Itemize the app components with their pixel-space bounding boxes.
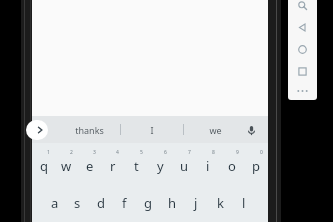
button[interactable]: 3 <box>78 143 101 183</box>
staticText: s <box>74 194 81 212</box>
staticText: 7 <box>188 149 191 156</box>
staticText: y <box>157 157 164 175</box>
staticText: 4 <box>116 149 119 156</box>
staticText: 1 <box>47 149 50 156</box>
staticText: k <box>217 194 224 212</box>
staticText: 9 <box>236 149 239 156</box>
button[interactable]: 4 <box>101 143 124 183</box>
staticText: j <box>194 194 198 212</box>
staticText: p <box>252 157 260 175</box>
button[interactable]: 8 <box>196 143 220 183</box>
staticText: t <box>134 157 139 175</box>
button[interactable]: j <box>184 183 208 222</box>
button[interactable]: f <box>112 183 136 222</box>
button[interactable]: 2 <box>55 143 78 183</box>
staticText: 3 <box>93 149 96 156</box>
staticText: a <box>51 194 59 212</box>
button[interactable]: Home <box>288 38 317 60</box>
staticText: g <box>144 194 152 212</box>
staticText: e <box>86 157 94 175</box>
staticText: thanks <box>75 124 104 136</box>
button[interactable]: s <box>66 183 89 222</box>
button[interactable]: 6 <box>148 143 172 183</box>
staticText: f <box>122 194 127 212</box>
button[interactable]: d <box>89 183 112 222</box>
staticText: 8 <box>212 149 215 156</box>
staticText: I <box>150 124 154 136</box>
button[interactable]: 7 <box>172 143 196 183</box>
staticText: 2 <box>70 149 73 156</box>
button[interactable]: 0 <box>244 143 268 183</box>
button[interactable]: thanks <box>58 116 120 143</box>
button[interactable]: I <box>121 116 183 143</box>
button[interactable]: Zoom <box>288 0 317 16</box>
staticText: we <box>209 124 222 136</box>
staticText: 0 <box>260 149 263 156</box>
button[interactable]: l <box>232 183 256 222</box>
button[interactable]: g <box>136 183 160 222</box>
staticText: w <box>61 157 72 175</box>
staticText: q <box>40 157 48 175</box>
staticText: 5 <box>140 149 143 156</box>
button[interactable]: h <box>160 183 184 222</box>
staticText: h <box>168 194 177 212</box>
staticText: d <box>97 194 105 212</box>
staticText: 6 <box>164 149 167 156</box>
button[interactable]: 5 <box>124 143 148 183</box>
button[interactable]: More <box>288 82 317 100</box>
button[interactable]: Voice input <box>240 119 262 141</box>
button[interactable]: 1 <box>32 143 55 183</box>
button[interactable]: k <box>208 183 232 222</box>
staticText: l <box>242 194 246 212</box>
staticText: u <box>180 157 189 175</box>
staticText: r <box>110 157 116 175</box>
button[interactable]: 9 <box>220 143 244 183</box>
button[interactable]: Overview <box>288 60 317 82</box>
button[interactable]: a <box>43 183 66 222</box>
staticText: i <box>206 157 210 175</box>
staticText: o <box>228 157 236 175</box>
button[interactable]: we <box>184 116 246 143</box>
button[interactable]: Back <box>288 16 317 38</box>
button[interactable]: Expand suggestions <box>26 120 48 140</box>
